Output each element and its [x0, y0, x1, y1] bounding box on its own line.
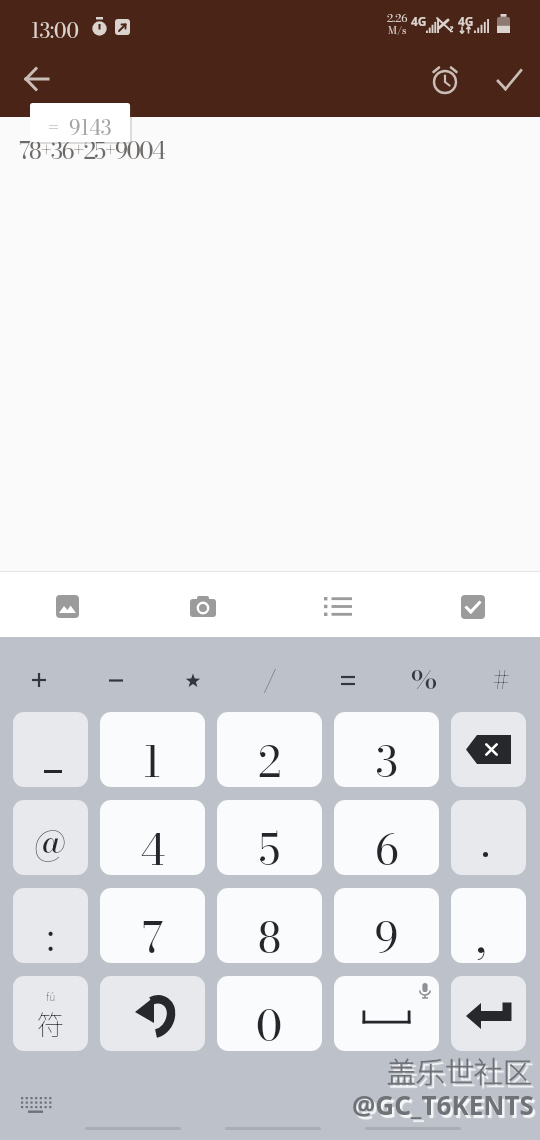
- staticText: 7: [142, 906, 164, 963]
- button[interactable]: 8: [217, 888, 322, 963]
- staticText: 9: [375, 906, 399, 963]
- staticText: /: [263, 660, 277, 700]
- button[interactable]: [309, 658, 386, 702]
- staticText: = 9143: [48, 112, 112, 143]
- button[interactable]: [77, 658, 154, 702]
- button[interactable]: 6: [334, 800, 439, 875]
- staticText: 符: [37, 1004, 64, 1043]
- staticText: M/s: [388, 23, 407, 35]
- staticText: :: [47, 910, 55, 963]
- button[interactable]: [334, 976, 439, 1051]
- staticText: 5: [259, 818, 280, 875]
- button[interactable]: 7: [100, 888, 205, 963]
- button[interactable]: [451, 712, 526, 787]
- staticText: 2.26: [387, 10, 408, 23]
- staticText: 3: [376, 730, 398, 787]
- staticText: 4G: [458, 13, 474, 26]
- button[interactable]: [451, 800, 526, 875]
- button[interactable]: ,: [451, 888, 526, 963]
- button[interactable]: [0, 658, 77, 702]
- button[interactable]: [451, 976, 526, 1051]
- button[interactable]: [44, 583, 91, 630]
- staticText: 8: [258, 906, 282, 963]
- staticText: 6: [375, 818, 399, 875]
- staticText: @: [34, 819, 67, 868]
- button[interactable]: /: [231, 658, 308, 702]
- button[interactable]: 0: [217, 976, 322, 1051]
- button[interactable]: 4: [100, 800, 205, 875]
- button[interactable]: @: [13, 800, 88, 875]
- button[interactable]: [485, 56, 533, 104]
- staticText: fú: [46, 988, 56, 1004]
- button[interactable]: [16, 1092, 60, 1122]
- button[interactable]: [179, 583, 226, 630]
- staticText: 13:00: [31, 15, 79, 43]
- button[interactable]: = 9143: [30, 103, 130, 142]
- staticText: 78+36+25+9004: [19, 133, 165, 167]
- staticText: 2: [258, 730, 282, 787]
- button[interactable]: [154, 658, 231, 702]
- staticText: 4G: [411, 13, 427, 26]
- staticText: ,: [476, 899, 487, 963]
- button[interactable]: #: [463, 658, 540, 702]
- staticText: #: [493, 660, 510, 700]
- staticText: 1: [143, 730, 162, 787]
- button[interactable]: [421, 57, 469, 105]
- button[interactable]: [314, 583, 361, 630]
- staticText: @GC_T6KENTS: [352, 1087, 534, 1122]
- button[interactable]: [13, 712, 88, 787]
- button[interactable]: 2: [217, 712, 322, 787]
- button[interactable]: 5: [217, 800, 322, 875]
- button[interactable]: [13, 55, 61, 103]
- staticText: 4: [140, 818, 165, 875]
- button[interactable]: 3: [334, 712, 439, 787]
- staticText: 盖乐世社区: [387, 1049, 533, 1091]
- button[interactable]: %: [386, 658, 463, 702]
- button[interactable]: fú: [13, 976, 88, 1051]
- button[interactable]: 1: [100, 712, 205, 787]
- button[interactable]: [100, 976, 205, 1051]
- button[interactable]: :: [13, 888, 88, 963]
- staticText: %: [411, 660, 438, 700]
- button[interactable]: 9: [334, 888, 439, 963]
- button[interactable]: [449, 583, 496, 630]
- staticText: 0: [256, 994, 283, 1051]
